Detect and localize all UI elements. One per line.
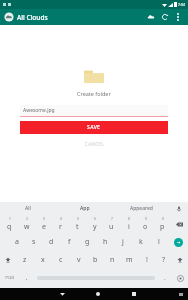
button[interactable]: Switch keyboard [174, 288, 188, 300]
staticText: r [59, 222, 62, 232]
button[interactable]: ? [155, 251, 172, 269]
staticText: d [49, 237, 54, 247]
button[interactable]: Shift [172, 251, 188, 269]
button[interactable]: Enter [168, 233, 188, 251]
staticText: n [110, 255, 115, 265]
staticText: z [23, 255, 27, 265]
button[interactable]: j [114, 233, 132, 251]
staticText: l [158, 237, 160, 247]
button[interactable]: z [16, 251, 34, 269]
button[interactable]: . [158, 269, 172, 287]
button[interactable]: SAVE [20, 121, 168, 134]
button[interactable] [34, 269, 158, 287]
staticText: m [126, 255, 133, 265]
button[interactable]: l [150, 233, 168, 251]
button[interactable]: 8 [120, 215, 137, 233]
staticText: s [32, 237, 36, 247]
button[interactable]: a [8, 233, 25, 251]
button[interactable]: Recents [116, 288, 152, 300]
staticText: Create folder [77, 90, 111, 97]
staticText: 7:04 [178, 2, 185, 7]
staticText: a [15, 237, 19, 247]
button[interactable]: 6 [86, 215, 103, 233]
button[interactable]: 5 [69, 215, 86, 233]
staticText: x [41, 255, 45, 265]
staticText: k [139, 237, 143, 247]
staticText: 6 [94, 217, 96, 221]
staticText: All [25, 205, 31, 212]
staticText: f [68, 237, 71, 247]
button[interactable]: Appeared [113, 202, 170, 215]
staticText: e [42, 222, 46, 232]
staticText: o [143, 222, 148, 232]
staticText: ? [162, 255, 166, 265]
staticText: p [160, 222, 165, 232]
staticText: 5 [77, 217, 79, 221]
staticText: . [164, 274, 166, 282]
staticText: i [128, 222, 130, 232]
button[interactable]: Voice input [170, 202, 188, 215]
staticText: u [109, 222, 114, 232]
button[interactable]: 1 [0, 215, 18, 233]
button[interactable]: f [60, 233, 78, 251]
button[interactable]: g [78, 233, 96, 251]
button[interactable]: 3 [35, 215, 52, 233]
button[interactable]: Voice typing [172, 269, 188, 287]
button[interactable]: CANCEL [79, 139, 110, 149]
button[interactable]: Refresh [158, 10, 172, 24]
staticText: , [26, 274, 28, 282]
button[interactable]: Awesome.jpg [20, 105, 168, 117]
button[interactable]: d [42, 233, 60, 251]
staticText: w [24, 222, 30, 232]
button[interactable]: 0 [154, 215, 171, 233]
button[interactable]: 9 [137, 215, 154, 233]
button[interactable]: Clouds [144, 10, 158, 24]
button[interactable]: Home [80, 288, 116, 300]
staticText: v [77, 255, 81, 265]
button[interactable]: 7 [103, 215, 120, 233]
staticText: j [122, 237, 124, 247]
button[interactable]: m [121, 251, 138, 269]
button[interactable]: k [132, 233, 150, 251]
staticText: q [7, 222, 12, 232]
staticText: 3 [43, 217, 45, 221]
staticText: 2 [26, 217, 28, 221]
staticText: b [93, 255, 98, 265]
button[interactable]: n [104, 251, 121, 269]
button[interactable]: Backspace [171, 215, 188, 233]
button[interactable]: , [20, 269, 34, 287]
staticText: 1 [9, 217, 11, 221]
button[interactable]: App [56, 202, 113, 215]
staticText: 0 [162, 217, 164, 221]
button[interactable]: Back [44, 288, 80, 300]
button[interactable]: 4 [52, 215, 69, 233]
staticText: 8 [128, 217, 130, 221]
button[interactable]: ?123 [0, 269, 20, 287]
button[interactable]: More options [172, 11, 184, 23]
button[interactable]: h [96, 233, 114, 251]
staticText: Appeared [130, 205, 153, 212]
staticText: t [76, 222, 79, 232]
button[interactable]: 2 [18, 215, 35, 233]
button[interactable]: s [25, 233, 42, 251]
staticText: ?123 [5, 275, 15, 281]
button[interactable]: v [70, 251, 87, 269]
button[interactable]: c [52, 251, 70, 269]
button[interactable]: ! [138, 251, 155, 269]
staticText: 7 [111, 217, 113, 221]
staticText: h [103, 237, 108, 247]
staticText: All Clouds [17, 13, 48, 22]
staticText: c [59, 255, 63, 265]
staticText: 9 [145, 217, 147, 221]
staticText: App [80, 205, 90, 212]
staticText: g [85, 237, 90, 247]
staticText: Awesome.jpg [23, 107, 55, 114]
staticText: y [93, 222, 97, 232]
button[interactable]: Shift [0, 251, 16, 269]
button[interactable]: All [0, 202, 56, 215]
button[interactable]: b [87, 251, 104, 269]
staticText: SAVE [87, 124, 101, 131]
button[interactable]: x [34, 251, 52, 269]
staticText: 4 [60, 217, 62, 221]
staticText: ! [146, 255, 148, 265]
